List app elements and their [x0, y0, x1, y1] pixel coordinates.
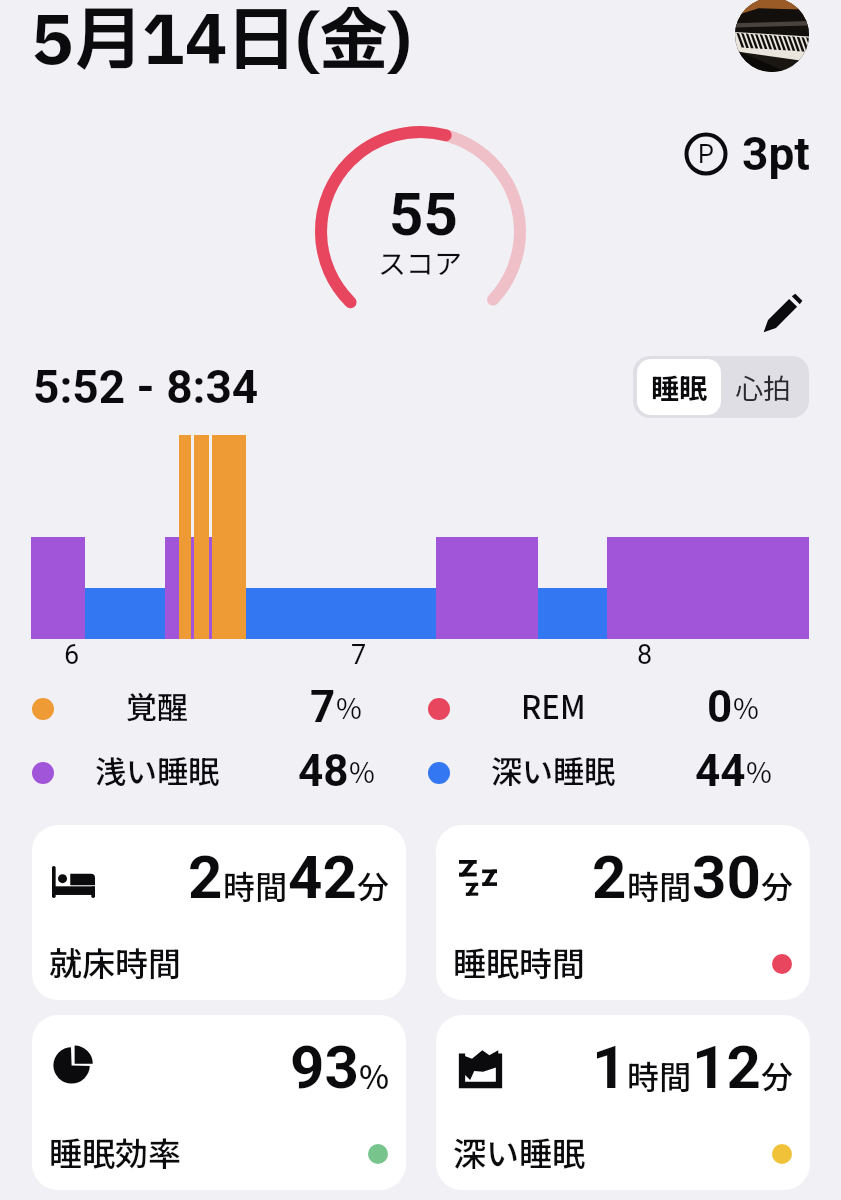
button[interactable]: 93: [32, 1015, 406, 1190]
staticText: 就床時間: [49, 938, 181, 986]
staticText: 分: [761, 1052, 794, 1098]
staticText: 42: [288, 842, 357, 912]
button[interactable]: Sleep score 55: [315, 126, 526, 337]
staticText: 浅い睡眠: [95, 747, 219, 792]
staticText: 7: [310, 681, 336, 733]
button[interactable]: 1: [436, 1015, 810, 1190]
staticText: P: [698, 140, 714, 169]
staticText: 時間: [627, 1052, 692, 1098]
staticText: 12: [692, 1032, 761, 1102]
staticText: 5:52 - 8:34: [33, 360, 259, 414]
staticText: スコア: [378, 242, 463, 283]
staticText: %: [359, 1052, 390, 1098]
staticText: %: [746, 751, 772, 792]
staticText: 2: [188, 842, 223, 912]
button[interactable]: 2: [436, 825, 810, 1000]
staticText: 時間: [627, 862, 692, 908]
staticText: 深い睡眠: [491, 747, 615, 792]
staticText: 0: [707, 681, 733, 733]
staticText: 55: [389, 179, 458, 249]
staticText: %: [336, 687, 362, 728]
staticText: 6: [64, 639, 80, 671]
staticText: 5月14日(金): [31, 0, 412, 94]
staticText: 93: [290, 1032, 359, 1102]
staticText: 1: [592, 1032, 627, 1102]
staticText: 8: [637, 639, 653, 671]
staticText: 覚醒: [126, 683, 188, 728]
staticText: 睡眠時間: [453, 938, 585, 986]
staticText: 44: [695, 745, 746, 797]
button[interactable]: Edit: [761, 291, 805, 335]
button[interactable]: 2: [32, 825, 406, 1000]
button[interactable]: Profile: [735, 0, 809, 72]
button[interactable]: P: [684, 127, 810, 181]
button[interactable]: 心拍: [721, 359, 805, 415]
staticText: %: [733, 687, 759, 728]
staticText: 時間: [223, 862, 288, 908]
staticText: 30: [692, 842, 761, 912]
staticText: %: [349, 751, 375, 792]
staticText: 分: [357, 862, 390, 908]
staticText: 睡眠: [651, 367, 708, 408]
staticText: 心拍: [735, 367, 792, 408]
staticText: REM: [521, 683, 586, 728]
staticText: 3pt: [742, 127, 810, 181]
staticText: 2: [592, 842, 627, 912]
button[interactable]: 睡眠: [637, 359, 721, 415]
staticText: 7: [351, 639, 367, 671]
staticText: 睡眠効率: [49, 1128, 181, 1176]
staticText: 分: [761, 862, 794, 908]
staticText: 深い睡眠: [453, 1128, 585, 1176]
staticText: 48: [298, 745, 349, 797]
